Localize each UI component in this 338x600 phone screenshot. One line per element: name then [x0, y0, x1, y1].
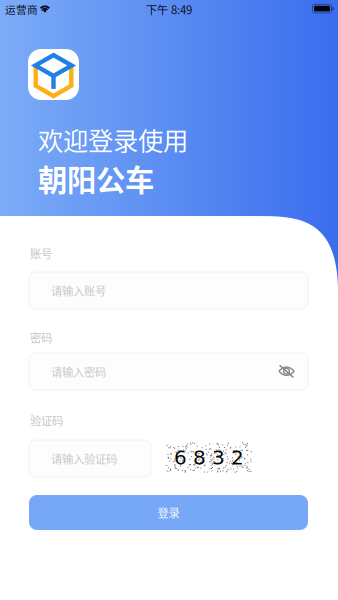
staticText: 欢迎登录使用 — [38, 121, 188, 143]
staticText: 账号 — [30, 245, 52, 257]
staticText: 验证码 — [30, 412, 63, 424]
button[interactable]: 登录 — [29, 495, 308, 530]
staticText: 6 8 3 2 — [174, 446, 244, 469]
staticText: 请输入密码 — [51, 363, 106, 380]
staticText: 运营商 — [5, 1, 38, 12]
staticText: 登录 — [157, 504, 179, 521]
staticText: 请输入账号 — [51, 282, 106, 299]
staticText: 朝阳公车 — [38, 157, 154, 182]
staticText: 请输入验证码 — [51, 450, 117, 467]
staticText: 密码 — [30, 329, 52, 341]
staticText: 下午 8:49 — [146, 1, 192, 11]
